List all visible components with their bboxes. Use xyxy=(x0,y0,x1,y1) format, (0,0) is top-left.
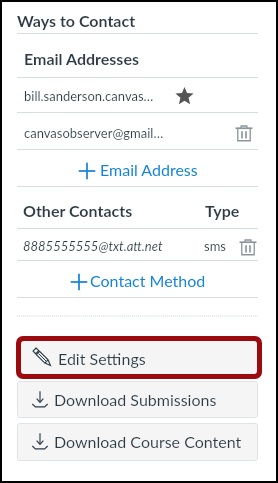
staticText: Email Addresses xyxy=(24,49,139,68)
staticText: Contact Method xyxy=(90,271,206,290)
button[interactable]: bill.sanderson.canvas… xyxy=(17,77,258,112)
staticText: Edit Settings xyxy=(58,349,146,368)
staticText: bill.sanderson.canvas… xyxy=(24,88,154,104)
staticText: canvasobserver@gmail… xyxy=(24,125,164,141)
button[interactable]: Contact Method xyxy=(17,262,258,299)
staticText: Other Contacts xyxy=(23,201,133,220)
button[interactable]: Edit Settings xyxy=(21,341,257,374)
button[interactable]: Download Course Content xyxy=(17,423,258,461)
button[interactable]: Delete contact method xyxy=(233,230,265,262)
button[interactable]: Delete email address xyxy=(228,114,260,149)
staticText: Download Course Content xyxy=(54,432,242,451)
button[interactable]: Download Submissions xyxy=(17,381,258,418)
staticText: Download Submissions xyxy=(54,390,217,409)
button[interactable]: Email Address xyxy=(17,151,258,188)
button[interactable]: canvasobserver@gmail… xyxy=(17,114,258,149)
staticText: Email Address xyxy=(100,160,198,179)
staticText: 8885555555@txt.att.net xyxy=(23,238,163,254)
button[interactable]: Default email address xyxy=(169,79,202,114)
button[interactable]: Ways to Contact xyxy=(2,2,276,33)
staticText: sms xyxy=(204,238,226,254)
button[interactable]: 8885555555@txt.att.net xyxy=(17,230,258,262)
staticText: Ways to Contact xyxy=(17,11,136,30)
staticText: Type xyxy=(205,201,240,220)
